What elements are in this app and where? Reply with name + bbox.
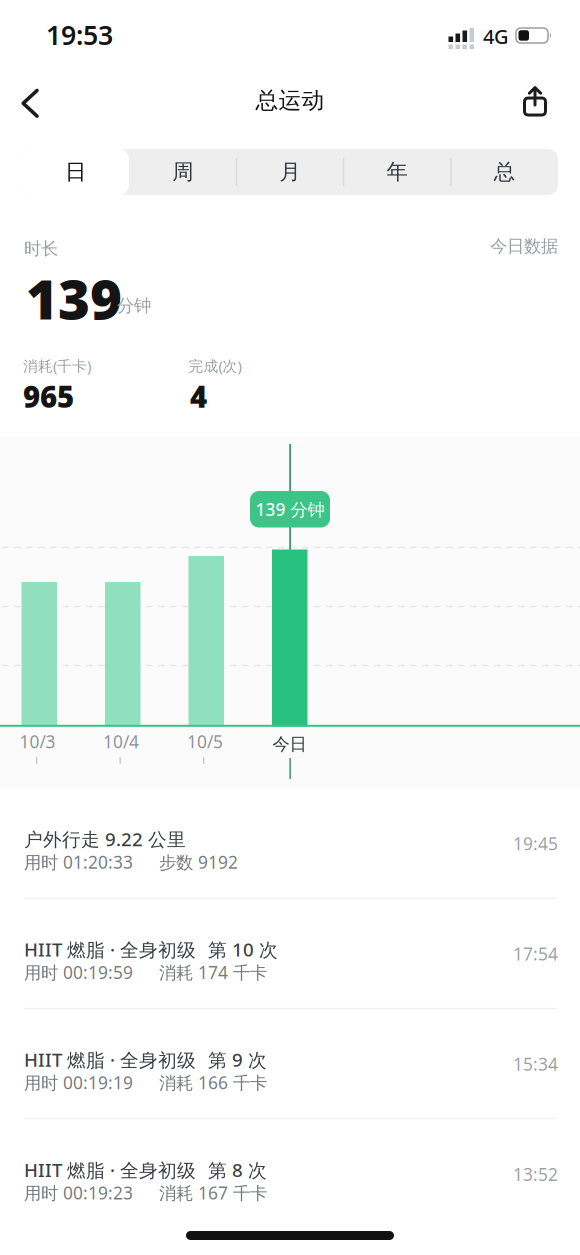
staticText: 日 <box>65 159 86 185</box>
staticText: 用时 00:19:59 <box>24 961 133 984</box>
staticText: 17:54 <box>513 942 558 965</box>
button[interactable]: HIIT 燃脂 · 全身初级 第 9 次 <box>0 1008 580 1119</box>
staticText: 用时 01:20:33 <box>24 850 133 873</box>
button[interactable]: 月 <box>236 149 343 195</box>
staticText: 4G <box>483 23 509 50</box>
staticText: HIIT 燃脂 · 全身初级 第 10 次 <box>24 937 278 962</box>
staticText: 消耗 166 千卡 <box>159 1071 267 1094</box>
button[interactable]: Share <box>521 85 549 118</box>
staticText: HIIT 燃脂 · 全身初级 第 8 次 <box>24 1157 267 1182</box>
button[interactable]: Back <box>20 88 62 119</box>
staticText: 完成(次) <box>188 356 241 375</box>
button[interactable]: HIIT 燃脂 · 全身初级 第 8 次 <box>0 1119 580 1229</box>
staticText: 消耗 167 千卡 <box>159 1181 267 1204</box>
staticText: 户外行走 9.22 公里 <box>24 826 186 851</box>
staticText: 周 <box>172 159 193 185</box>
staticText: 139 <box>26 262 122 335</box>
staticText: 4 <box>190 377 207 416</box>
staticText: 965 <box>23 377 74 416</box>
staticText: 总运动 <box>255 86 324 114</box>
staticText: 总 <box>494 159 515 185</box>
button[interactable]: 年 <box>344 149 451 195</box>
staticText: 分钟 <box>117 295 151 316</box>
staticText: 19:53 <box>46 17 113 52</box>
staticText: 10/5 <box>187 730 223 753</box>
staticText: 15:34 <box>513 1052 558 1075</box>
staticText: 今日 <box>273 733 307 755</box>
staticText: 步数 9192 <box>159 850 238 873</box>
staticText: 消耗(千卡) <box>23 356 91 375</box>
staticText: 19:45 <box>513 832 558 855</box>
button[interactable]: 日 <box>22 149 129 195</box>
staticText: HIIT 燃脂 · 全身初级 第 9 次 <box>24 1047 267 1072</box>
staticText: 用时 00:19:23 <box>24 1181 133 1204</box>
staticText: 消耗 174 千卡 <box>159 961 267 984</box>
button[interactable]: 周 <box>129 149 236 195</box>
staticText: 10/3 <box>19 730 55 753</box>
staticText: 时长 <box>24 238 58 259</box>
staticText: 139 分钟 <box>255 498 324 521</box>
staticText: 用时 00:19:19 <box>24 1071 133 1094</box>
staticText: 月 <box>279 159 300 185</box>
staticText: 今日数据 <box>490 235 558 257</box>
button[interactable]: 总 <box>451 149 558 195</box>
staticText: 10/4 <box>103 730 139 753</box>
staticText: 13:52 <box>513 1163 558 1186</box>
staticText: 年 <box>387 159 408 185</box>
button[interactable]: 户外行走 9.22 公里 <box>0 788 580 898</box>
button[interactable]: HIIT 燃脂 · 全身初级 第 10 次 <box>0 898 580 1008</box>
